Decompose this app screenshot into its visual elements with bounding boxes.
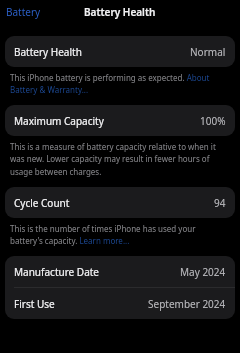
staticText: First Use: [14, 297, 55, 311]
staticText: 94: [214, 196, 226, 210]
staticText: Cycle Count: [14, 196, 70, 210]
button[interactable]: First Use: [5, 288, 235, 319]
staticText: Maximum Capacity: [14, 114, 104, 128]
button[interactable]: Battery: [0, 2, 49, 22]
button[interactable]: Battery Health: [5, 36, 235, 67]
staticText: Battery: [6, 5, 41, 19]
staticText: Normal: [190, 45, 226, 59]
staticText: This iPhone battery is performing as exp…: [10, 72, 226, 95]
staticText: 100%: [200, 114, 226, 128]
button[interactable]: Cycle Count: [5, 187, 235, 218]
staticText: May 2024: [180, 265, 226, 279]
staticText: This is the number of times iPhone has u…: [10, 223, 226, 246]
staticText: Battery Health: [84, 5, 156, 19]
button[interactable]: Maximum Capacity: [5, 105, 235, 136]
staticText: Manufacture Date: [14, 265, 100, 279]
button[interactable]: Manufacture Date: [5, 256, 235, 287]
staticText: September 2024: [148, 297, 226, 311]
staticText: Battery Health: [14, 45, 82, 59]
staticText: This is a measure of battery capacity re…: [10, 141, 226, 177]
